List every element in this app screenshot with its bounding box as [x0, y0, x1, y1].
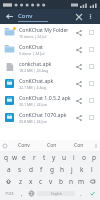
button[interactable]: v	[46, 175, 56, 187]
button[interactable]: u	[59, 151, 69, 163]
button[interactable]: b	[56, 175, 66, 187]
staticText: 20.1 MB | 24 Jun	[19, 102, 47, 107]
staticText: ConKChat My Folder	[19, 26, 69, 33]
staticText: k	[80, 165, 84, 174]
button[interactable]: Share	[73, 27, 84, 38]
button[interactable]: Conv	[10, 140, 38, 151]
button[interactable]: a	[3, 163, 14, 175]
button[interactable]: Backspace	[86, 175, 99, 187]
staticText: d	[29, 165, 33, 174]
staticText: a	[7, 165, 11, 174]
button[interactable]: Comma	[17, 188, 26, 199]
button[interactable]: q	[1, 151, 10, 163]
button[interactable]: More options	[85, 11, 96, 22]
staticText: 20.8 MB | 24 Jun	[19, 119, 47, 124]
staticText: n	[69, 177, 74, 186]
staticText: j	[71, 165, 73, 174]
button[interactable]: f	[36, 163, 47, 175]
staticText: w	[12, 153, 18, 162]
staticText: Conv	[18, 12, 33, 20]
staticText: c	[39, 177, 43, 186]
button[interactable]: o	[79, 151, 89, 163]
button[interactable]: y	[49, 151, 59, 163]
button[interactable]: s	[14, 163, 25, 175]
button[interactable]: c	[36, 175, 46, 187]
button[interactable]: Share	[73, 61, 84, 72]
button[interactable]: Share	[73, 112, 84, 123]
button[interactable]: Select item	[86, 95, 97, 106]
staticText: e	[22, 153, 26, 162]
button[interactable]: l	[87, 163, 97, 175]
button[interactable]: r	[29, 151, 39, 163]
button[interactable]: p	[89, 151, 99, 163]
button[interactable]: Shift	[1, 175, 15, 187]
button[interactable]: conkchat.apk	[0, 58, 100, 75]
button[interactable]: ?123	[1, 188, 17, 199]
staticText: conkchat.apk	[19, 60, 52, 67]
button[interactable]: Select item	[86, 112, 97, 123]
button[interactable]: Change language	[26, 188, 36, 199]
button[interactable]: ConKChat 1.0.5.2 apk	[0, 92, 100, 109]
staticText: l	[91, 165, 93, 174]
button[interactable]: Share	[73, 95, 84, 106]
staticText: ConKChat	[19, 43, 43, 50]
staticText: r	[33, 153, 36, 162]
staticText: 15 items | 24 Jul	[19, 34, 47, 39]
button[interactable]: Space	[37, 191, 75, 196]
staticText: ConKChat 1.0.5.2 apk	[19, 94, 71, 101]
button[interactable]: Share	[73, 44, 84, 55]
button[interactable]: m	[76, 175, 86, 187]
button[interactable]: Select item	[86, 61, 97, 72]
button[interactable]: Search	[85, 188, 99, 199]
staticText: English	[51, 192, 62, 196]
button[interactable]: ConKChat	[0, 41, 100, 58]
staticText: 3 items | 24 Jul	[19, 51, 45, 56]
button[interactable]: i	[69, 151, 79, 163]
button[interactable]: d	[25, 163, 36, 175]
staticText: f	[40, 165, 43, 174]
button[interactable]: t	[39, 151, 49, 163]
button[interactable]: Select item	[86, 44, 97, 55]
button[interactable]: More suggestions	[92, 140, 100, 151]
staticText: 22.1 MB | 4 Aug	[19, 85, 47, 90]
staticText: p	[92, 153, 96, 162]
button[interactable]: g	[47, 163, 57, 175]
button[interactable]: Con	[38, 140, 65, 151]
staticText: g	[50, 165, 54, 174]
staticText: .	[80, 190, 82, 198]
button[interactable]: h	[57, 163, 67, 175]
staticText: 18.2 MB | 23 Aug	[19, 68, 49, 73]
button[interactable]: n	[66, 175, 76, 187]
button[interactable]: Back	[4, 11, 15, 22]
button[interactable]: Select item	[86, 78, 97, 89]
staticText: ConKChat 1070.apk	[19, 111, 67, 118]
button[interactable]: j	[67, 163, 77, 175]
staticText: ?123	[5, 191, 14, 196]
staticText: o	[82, 153, 86, 162]
staticText: ConKChat.apk	[19, 77, 54, 84]
button[interactable]: Con	[65, 140, 92, 151]
button[interactable]: e	[19, 151, 29, 163]
staticText: ,	[21, 190, 23, 198]
button[interactable]: Emoji	[0, 140, 10, 151]
button[interactable]: k	[77, 163, 87, 175]
button[interactable]: w	[10, 151, 19, 163]
staticText: m	[78, 177, 85, 186]
button[interactable]: z	[15, 175, 26, 187]
button[interactable]: ConKChat My Folder	[0, 24, 100, 41]
button[interactable]: ConKChat 1070.apk	[0, 109, 100, 126]
button[interactable]: Select item	[86, 27, 97, 38]
staticText: v	[49, 177, 53, 186]
button[interactable]: Clear search	[73, 11, 84, 22]
staticText: u	[62, 153, 67, 162]
button[interactable]: Period	[76, 188, 85, 199]
button[interactable]: Conv	[18, 12, 48, 22]
staticText: z	[19, 177, 23, 186]
button[interactable]: Share	[73, 78, 84, 89]
staticText: x	[29, 177, 33, 186]
staticText: Conv	[18, 142, 30, 149]
staticText: t	[43, 153, 46, 162]
button[interactable]: ConKChat.apk	[0, 75, 100, 92]
staticText: b	[59, 177, 63, 186]
button[interactable]: x	[26, 175, 36, 187]
